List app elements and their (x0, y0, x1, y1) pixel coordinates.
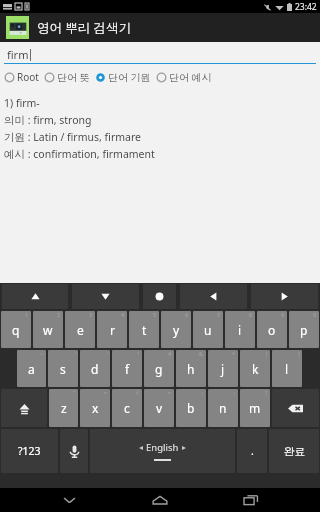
button[interactable]: Space (90, 429, 235, 473)
staticText: m (249, 400, 261, 416)
button[interactable]: = (80, 389, 110, 427)
staticText: u (204, 322, 212, 338)
staticText: o (268, 322, 276, 338)
button[interactable]: Select (143, 284, 176, 309)
staticText: v (156, 400, 163, 416)
staticText: r (110, 322, 115, 338)
staticText: h (187, 361, 195, 377)
staticText: f (125, 361, 130, 377)
staticText: 7 (217, 311, 221, 318)
button[interactable]: ) (272, 350, 302, 387)
button[interactable]: Down (72, 284, 139, 309)
staticText: g (155, 361, 163, 377)
button[interactable]: . (237, 429, 267, 473)
button[interactable]: Home (138, 488, 182, 512)
button[interactable]: Hide keyboard (47, 488, 91, 512)
button[interactable]: " (49, 389, 78, 427)
button[interactable]: Voice input (60, 429, 88, 473)
button[interactable]: Root (4, 70, 39, 84)
staticText: 1 (25, 311, 29, 318)
staticText: 기원 : Latin / firmus, firmare (4, 130, 141, 144)
staticText: 23:42 (295, 1, 317, 13)
button[interactable]: 6 (161, 311, 191, 348)
button[interactable]: : (176, 389, 206, 427)
staticText: : (202, 389, 204, 396)
button[interactable]: Left (180, 284, 247, 309)
button[interactable]: ; (208, 389, 238, 427)
button[interactable]: ~ (17, 350, 46, 387)
staticText: & (199, 350, 204, 357)
staticText: 6 (185, 311, 189, 318)
button[interactable]: & (176, 350, 206, 387)
staticText: 4 (121, 311, 125, 318)
button[interactable]: ? (240, 389, 270, 427)
staticText: b (187, 400, 195, 416)
staticText: z (61, 400, 67, 416)
staticText: 9 (281, 311, 285, 318)
staticText: ( (266, 350, 268, 357)
button[interactable]: 7 (193, 311, 223, 348)
button[interactable]: Up (2, 284, 68, 309)
staticText: English (146, 441, 179, 454)
button[interactable]: ° (112, 350, 142, 387)
staticText: ; (234, 389, 236, 396)
staticText: s (60, 361, 66, 377)
staticText: " (73, 389, 76, 396)
staticText: t (142, 322, 147, 338)
staticText: 1) firm- (4, 96, 40, 110)
button[interactable]: 4 (97, 311, 127, 348)
staticText: ?123 (18, 444, 41, 458)
button[interactable]: ( (240, 350, 270, 387)
button[interactable]: 5 (129, 311, 159, 348)
button[interactable]: 단어 기원 (95, 70, 151, 84)
button[interactable]: ’ (48, 350, 78, 387)
button[interactable]: Backspace (272, 389, 319, 427)
button[interactable]: Recent apps (229, 488, 273, 512)
staticText: # (168, 350, 172, 357)
staticText: y (173, 322, 180, 338)
button[interactable]: ‘ (80, 350, 110, 387)
button[interactable]: ↓ (112, 389, 142, 427)
staticText: c (124, 400, 130, 416)
staticText: * (232, 350, 236, 357)
staticText: = (104, 389, 108, 396)
staticText: 3 (89, 311, 93, 318)
button[interactable]: 9 (257, 311, 287, 348)
button[interactable]: 2 (33, 311, 63, 348)
staticText: . (251, 444, 254, 458)
staticText: ) (298, 350, 300, 357)
staticText: 2 (57, 311, 61, 318)
button[interactable]: = (144, 389, 174, 427)
staticText: 0 (313, 311, 317, 318)
button[interactable]: 3 (65, 311, 95, 348)
staticText: 단어 기원 (108, 70, 151, 84)
button[interactable]: 0 (289, 311, 319, 348)
button[interactable]: Right (251, 284, 318, 309)
button[interactable]: ?123 (1, 429, 58, 473)
staticText: 5 (153, 311, 157, 318)
button[interactable]: firm (4, 46, 316, 63)
staticText: = (168, 389, 172, 396)
staticText: ~ (40, 350, 44, 357)
button[interactable]: 1 (1, 311, 31, 348)
staticText: j (221, 361, 225, 377)
staticText: 영어 뿌리 검색기 (37, 19, 132, 36)
staticText: d (91, 361, 99, 377)
button[interactable]: 완료 (269, 429, 319, 473)
button[interactable]: 단어 뜻 (44, 70, 90, 84)
button[interactable]: * (208, 350, 238, 387)
button[interactable]: Shift (1, 389, 47, 427)
button[interactable]: # (144, 350, 174, 387)
staticText: l (285, 361, 289, 377)
staticText: i (238, 322, 242, 338)
staticText: k (252, 361, 259, 377)
staticText: p (300, 322, 308, 338)
staticText: w (43, 322, 53, 338)
staticText: ? (265, 389, 268, 396)
button[interactable]: 단어 예시 (156, 70, 212, 84)
button[interactable]: 8 (225, 311, 255, 348)
staticText: 8 (249, 311, 253, 318)
staticText: ° (137, 350, 140, 357)
staticText: a (28, 361, 35, 377)
staticText: x (92, 400, 99, 416)
